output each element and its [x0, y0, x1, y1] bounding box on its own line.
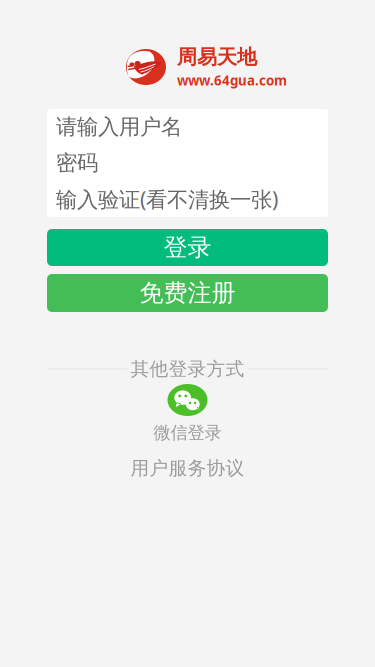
button[interactable]: 用户服务协议 — [130, 458, 244, 478]
button[interactable]: 微信登录 — [127, 384, 247, 443]
staticText: 微信登录 — [153, 422, 221, 443]
staticText: 输入验证(看不清换一张) — [56, 185, 278, 213]
staticText: www.64gua.com — [177, 71, 287, 89]
staticText: 密码 — [56, 150, 98, 176]
staticText: 登录 — [163, 233, 211, 262]
staticText: 免费注册 — [139, 278, 235, 308]
button[interactable]: 登录 — [47, 229, 328, 266]
staticText: 周易天地 — [177, 45, 257, 69]
staticText: 请输入用户名 — [56, 114, 182, 140]
button[interactable]: 免费注册 — [47, 274, 328, 312]
staticText: 用户服务协议 — [130, 457, 244, 480]
staticText: 其他登录方式 — [130, 357, 244, 380]
